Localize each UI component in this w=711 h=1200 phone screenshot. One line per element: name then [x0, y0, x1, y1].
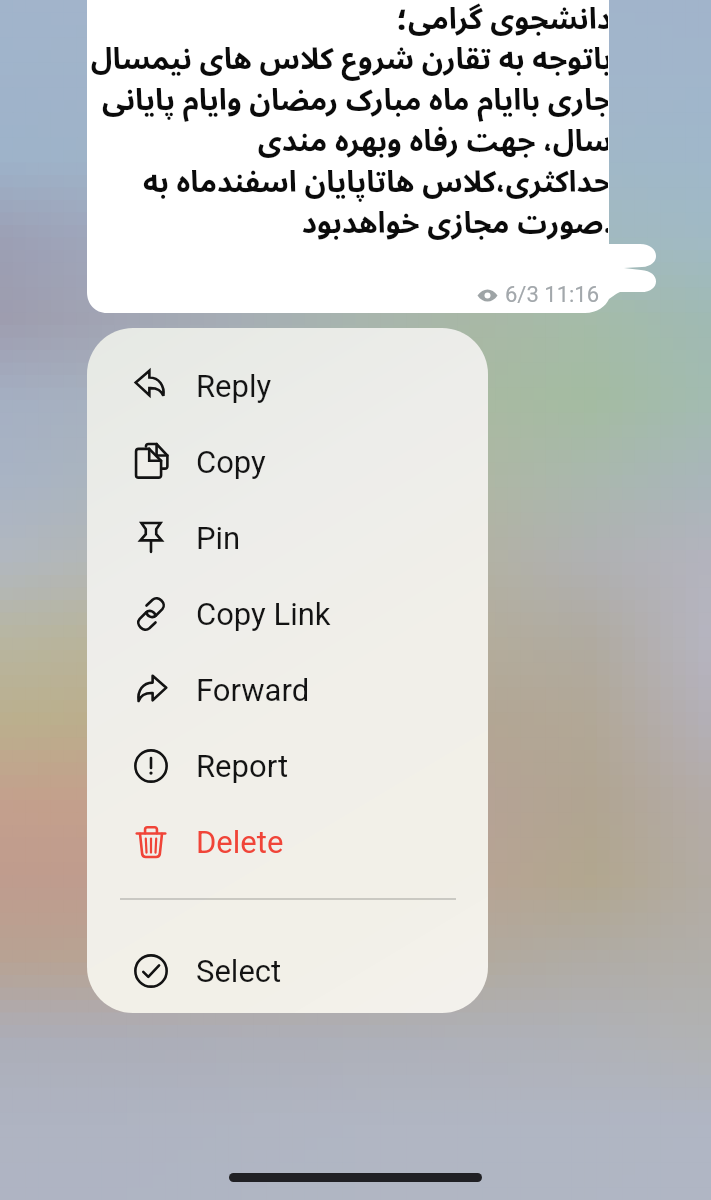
other: Forward — [133, 672, 169, 708]
other: Select — [133, 953, 169, 989]
staticText: 6/3 11:16 — [505, 282, 600, 308]
staticText: Copy — [196, 444, 266, 480]
other: Pin — [133, 520, 169, 556]
staticText: Select — [196, 953, 282, 989]
button[interactable]: Copy Link — [87, 576, 488, 652]
button[interactable]: Delete — [87, 804, 488, 880]
staticText: Report — [196, 748, 289, 784]
staticText: دانشجوی گرامی؛ باتوجه به تقارن شروع کلاس… — [90, 0, 608, 255]
button[interactable]: Reply — [87, 348, 488, 424]
other: Delete — [133, 824, 169, 860]
staticText: Forward — [196, 672, 310, 708]
staticText: Reply — [196, 368, 272, 404]
staticText: Pin — [196, 520, 241, 556]
other: Copy — [133, 444, 169, 480]
staticText: Delete — [196, 824, 284, 860]
button[interactable]: Report — [87, 728, 488, 804]
staticText: Copy Link — [196, 596, 331, 632]
other: Reply — [133, 368, 169, 404]
button[interactable]: Forward — [87, 652, 488, 728]
other: Report — [133, 748, 169, 784]
button[interactable]: Copy — [87, 424, 488, 500]
button[interactable]: Pin — [87, 500, 488, 576]
button[interactable]: Select — [87, 933, 488, 1009]
other: Copy Link — [133, 596, 169, 632]
